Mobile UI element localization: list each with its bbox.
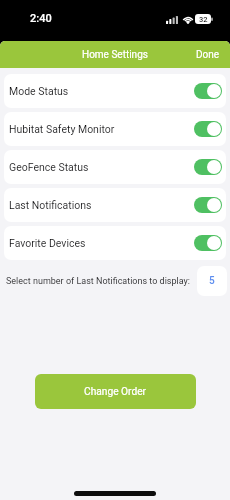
staticText: Change Order <box>84 386 147 398</box>
button[interactable]: GeoFence Status <box>4 150 226 184</box>
button[interactable]: Favorite Devices <box>4 226 226 260</box>
staticText: Last Notifications <box>9 199 92 211</box>
button[interactable]: Toggle setting <box>194 83 222 99</box>
button[interactable]: Last Notifications <box>4 188 226 222</box>
button[interactable]: Toggle setting <box>194 235 222 251</box>
staticText: 2:40 <box>30 12 52 25</box>
button[interactable]: Done <box>184 45 230 65</box>
staticText: Select number of Last Notifications to d… <box>6 276 190 287</box>
button[interactable]: Mode Status <box>4 74 226 108</box>
staticText: Done <box>196 49 220 61</box>
button[interactable]: Toggle setting <box>194 159 222 175</box>
button[interactable]: Toggle setting <box>194 121 222 137</box>
button[interactable]: Toggle setting <box>194 197 222 213</box>
staticText: Hubitat Safety Monitor <box>9 123 115 135</box>
button[interactable]: Hubitat Safety Monitor <box>4 112 226 146</box>
staticText: GeoFence Status <box>9 161 89 173</box>
staticText: 32 <box>199 15 208 24</box>
button[interactable]: Change Order <box>35 374 196 409</box>
button[interactable]: 5 <box>197 266 227 296</box>
staticText: 5 <box>209 275 215 287</box>
staticText: Favorite Devices <box>9 237 86 249</box>
staticText: Home Settings <box>82 49 148 61</box>
staticText: Mode Status <box>9 85 69 97</box>
